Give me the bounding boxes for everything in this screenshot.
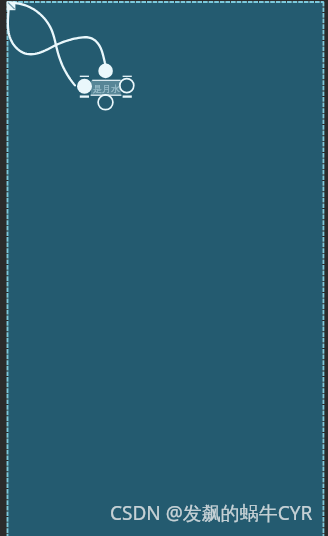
staticText: 是月水: [93, 83, 120, 94]
button[interactable]: Resize element: [98, 95, 113, 110]
button[interactable]: 是月水: [91, 80, 121, 96]
staticText: CSDN @发飙的蜗牛CYR: [110, 500, 313, 526]
button[interactable]: Delete element: [77, 79, 92, 94]
button[interactable]: Rotate element: [98, 63, 113, 78]
button[interactable]: Edit element: [120, 78, 135, 93]
